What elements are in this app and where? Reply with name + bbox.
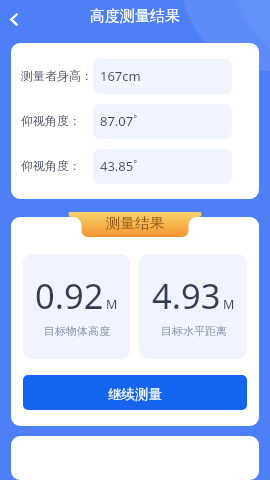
staticText: 4.93	[152, 272, 221, 319]
staticText: 87.07˚	[100, 112, 138, 130]
staticText: 0.92	[35, 272, 104, 319]
staticText: 167cm	[100, 67, 141, 85]
staticText: 高度测量结果	[90, 7, 180, 26]
staticText: 目标物体高度	[44, 324, 110, 338]
staticText: 仰视角度：	[21, 158, 93, 173]
staticText: 测量者身高：	[21, 68, 93, 83]
button[interactable]: 继续测量	[23, 375, 247, 410]
staticText: M	[223, 296, 235, 313]
staticText: 目标水平距离	[161, 324, 227, 338]
staticText: 43.85˚	[100, 157, 138, 175]
staticText: 仰视角度：	[21, 113, 93, 128]
staticText: 测量结果	[106, 214, 164, 232]
staticText: 继续测量	[108, 386, 162, 403]
staticText: M	[106, 296, 118, 313]
button[interactable]: Back	[0, 5, 28, 33]
